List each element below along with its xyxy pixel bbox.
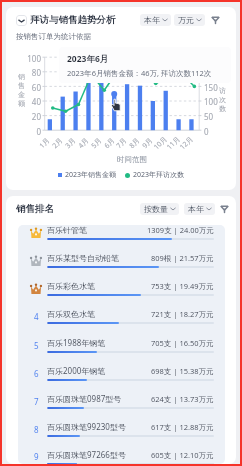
staticText: 百乐圆珠笔97266型号 — [47, 449, 126, 460]
button[interactable]: 本年 — [184, 203, 215, 215]
staticText: 2月 — [50, 135, 66, 151]
button[interactable]: 9 — [18, 449, 225, 464]
staticText: 金 — [18, 90, 25, 99]
staticText: 百乐针管笔 — [47, 225, 87, 235]
button[interactable]: 4 — [18, 309, 225, 337]
staticText: 10月 — [152, 134, 170, 152]
staticText: 9 — [34, 451, 39, 462]
staticText: 624支 | 13.73万元 — [151, 394, 214, 404]
staticText: 3月 — [63, 135, 79, 151]
button[interactable]: 8 — [18, 421, 225, 449]
staticText: 百乐圆珠笔99230型号 — [47, 421, 126, 432]
button[interactable]: 按数量 — [140, 203, 179, 215]
staticText: 200 — [204, 67, 225, 78]
staticText: 访 — [219, 86, 226, 95]
staticText: 8 — [34, 424, 39, 435]
button[interactable]: 5 — [18, 337, 225, 365]
staticText: 1309支 | 24.00万元 — [147, 225, 214, 235]
staticText: 7月 — [114, 135, 130, 151]
staticText: 次 — [219, 95, 226, 104]
staticText: 809根 | 21.57万元 — [151, 253, 214, 263]
staticText: 2023年6月 — [67, 53, 109, 65]
button[interactable]: 6 — [18, 365, 225, 393]
staticText: 百乐1988年钢笔 — [47, 337, 106, 348]
button[interactable]: Filter — [211, 16, 220, 24]
button[interactable]: 百乐针管笔 — [18, 225, 225, 253]
staticText: 150 — [204, 82, 225, 93]
staticText: 5月 — [89, 135, 105, 151]
staticText: 6月 — [102, 135, 118, 151]
staticText: 8月 — [127, 135, 143, 151]
staticText: 2023年拜访次数 — [133, 170, 185, 180]
staticText: 百乐某型号自动铅笔 — [47, 253, 119, 263]
staticText: 605支 | 12.10万元 — [151, 450, 214, 460]
staticText: 9月 — [140, 135, 156, 151]
staticText: 按数量 — [144, 204, 168, 214]
staticText: 4月 — [76, 135, 92, 151]
button[interactable]: 万元 — [174, 14, 205, 26]
staticText: 11月 — [165, 134, 183, 152]
staticText: 1月 — [37, 135, 53, 151]
staticText: 2023年销售金额 — [65, 170, 117, 180]
staticText: 4 — [34, 311, 39, 322]
staticText: 698支 | 15.38万元 — [151, 366, 214, 376]
staticText: 0 — [204, 126, 225, 137]
staticText: 753支 | 19.49万元 — [151, 281, 214, 291]
staticText: 售 — [18, 81, 25, 90]
staticText: 0 — [20, 126, 41, 137]
staticText: 时间范围 — [117, 155, 147, 164]
staticText: 12月 — [178, 134, 196, 152]
staticText: 7 — [34, 396, 39, 407]
staticText: 本年 — [188, 204, 204, 214]
staticText: 20 — [20, 111, 41, 122]
button[interactable]: 7 — [18, 393, 225, 421]
staticText: 百乐圆珠笔0987型号 — [47, 393, 122, 404]
staticText: 40 — [20, 96, 41, 107]
staticText: 百乐彩色水笔 — [47, 281, 95, 291]
staticText: 销售排名 — [16, 203, 54, 215]
staticText: 5 — [34, 340, 39, 351]
staticText: 百乐2000年钢笔 — [47, 365, 106, 376]
button[interactable]: 百乐彩色水笔 — [18, 281, 225, 309]
staticText: 销 — [18, 72, 25, 81]
staticText: 额 — [18, 99, 25, 108]
staticText: 2023年6月销售金额：46万, 拜访次数112次 — [67, 68, 212, 78]
staticText: 6 — [34, 368, 39, 379]
staticText: 100 — [20, 53, 41, 64]
staticText: 50 — [204, 111, 225, 122]
staticText: 拜访与销售趋势分析 — [30, 14, 116, 26]
button[interactable]: Collapse section — [16, 15, 27, 26]
button[interactable]: 百乐某型号自动铅笔 — [18, 253, 225, 281]
staticText: 721支 | 18.27万元 — [151, 309, 214, 319]
staticText: 617支 | 12.88万元 — [151, 422, 214, 432]
staticText: 100 — [204, 96, 225, 107]
staticText: 万元 — [178, 15, 194, 25]
staticText: 按销售订单为统计依据 — [16, 32, 91, 41]
button[interactable]: 本年 — [140, 14, 171, 26]
staticText: 705支 | 16.50万元 — [151, 338, 214, 348]
staticText: 百乐双色水笔 — [47, 309, 95, 319]
staticText: 80 — [20, 67, 41, 78]
staticText: 本年 — [144, 15, 160, 25]
staticText: 数 — [219, 104, 226, 113]
staticText: 60 — [20, 82, 41, 93]
button[interactable]: Filter ranking — [220, 205, 229, 213]
